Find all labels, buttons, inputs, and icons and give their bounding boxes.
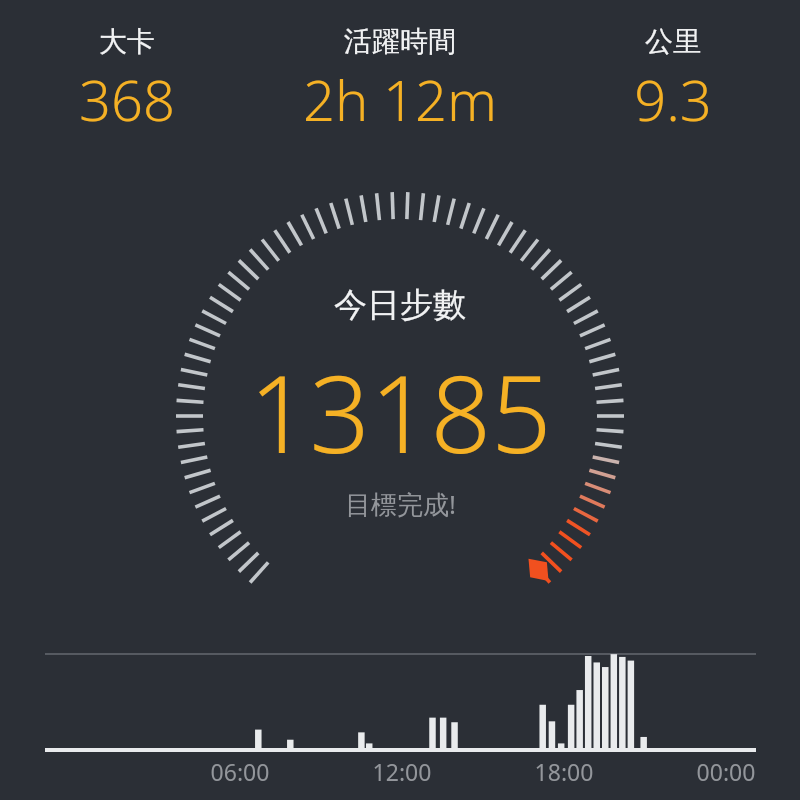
staticText: 目標完成! xyxy=(345,486,456,522)
staticText: 13185 xyxy=(249,340,552,484)
staticText: 公里 xyxy=(645,24,701,59)
button[interactable]: Daily step goal gauge xyxy=(0,160,800,630)
button[interactable]: 公里 xyxy=(546,0,800,160)
staticText: 12:00 xyxy=(357,756,447,787)
staticText: 18:00 xyxy=(519,756,609,787)
button[interactable]: Hourly activity chart xyxy=(0,625,800,800)
staticText: 大卡 xyxy=(99,24,155,59)
staticText: 9.3 xyxy=(634,61,712,137)
button[interactable]: 大卡 xyxy=(0,0,254,160)
button[interactable]: 活躍時間 xyxy=(254,0,546,160)
staticText: 368 xyxy=(79,61,175,137)
staticText: 活躍時間 xyxy=(344,24,456,59)
staticText: 2h 12m xyxy=(303,61,497,137)
staticText: 今日步數 xyxy=(334,284,466,326)
staticText: 06:00 xyxy=(195,756,285,787)
staticText: 00:00 xyxy=(681,756,771,787)
